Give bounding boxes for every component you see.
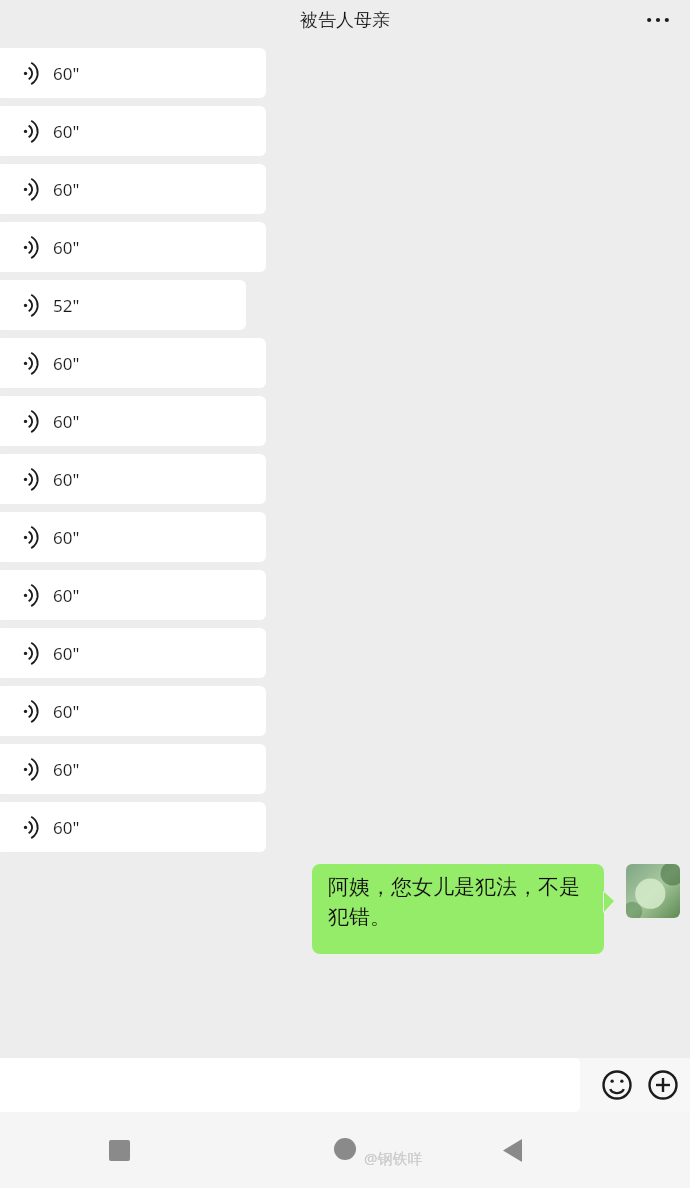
button[interactable]: Recents — [96, 1127, 142, 1173]
button[interactable]: 60" — [0, 338, 266, 388]
staticText: 52" — [53, 294, 80, 317]
staticText: 阿姨，您女儿是犯法，不是犯错。 — [328, 874, 592, 931]
staticText: 60" — [53, 584, 80, 607]
staticText: 60" — [53, 410, 80, 433]
button[interactable]: 阿姨，您女儿是犯法，不是犯错。 — [312, 864, 614, 954]
staticText: 被告人母亲 — [300, 9, 390, 32]
button[interactable]: 60" — [0, 744, 266, 794]
button[interactable]: 60" — [0, 48, 266, 98]
button[interactable]: 60" — [0, 570, 266, 620]
staticText: 60" — [53, 178, 80, 201]
staticText: 60" — [53, 120, 80, 143]
button[interactable]: 60" — [0, 106, 266, 156]
button[interactable]: 60" — [0, 396, 266, 446]
button[interactable]: 60" — [0, 512, 266, 562]
staticText: 60" — [53, 758, 80, 781]
staticText: 60" — [53, 526, 80, 549]
staticText: 60" — [53, 236, 80, 259]
button[interactable]: 60" — [0, 222, 266, 272]
button[interactable]: Avatar — [626, 864, 680, 918]
button[interactable]: 60" — [0, 164, 266, 214]
button[interactable]: More options — [638, 0, 678, 40]
staticText: 60" — [53, 700, 80, 723]
button[interactable]: 60" — [0, 454, 266, 504]
button[interactable]: Emoji — [594, 1062, 640, 1108]
staticText: @钢铁咩 — [364, 1148, 423, 1168]
staticText: 60" — [53, 816, 80, 839]
staticText: 60" — [53, 62, 80, 85]
button[interactable]: 52" — [0, 280, 246, 330]
staticText: 60" — [53, 468, 80, 491]
staticText: 60" — [53, 642, 80, 665]
button[interactable]: 60" — [0, 802, 266, 852]
button[interactable]: Back — [489, 1127, 535, 1173]
button[interactable]: Home — [322, 1127, 368, 1173]
button[interactable]: More functions — [640, 1062, 686, 1108]
staticText: 60" — [53, 352, 80, 375]
button[interactable]: 60" — [0, 628, 266, 678]
button[interactable]: 60" — [0, 686, 266, 736]
